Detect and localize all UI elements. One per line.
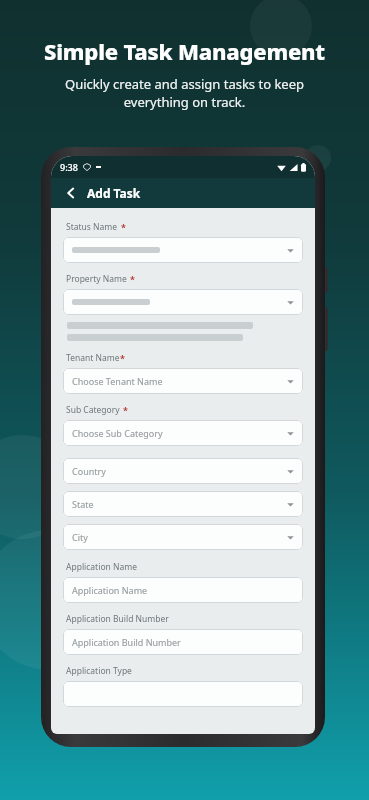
- staticText: Application Build Number: [72, 636, 181, 648]
- staticText: City: [72, 531, 88, 543]
- staticText: Application Name: [66, 561, 137, 573]
- button[interactable]: Application Name: [63, 577, 303, 603]
- button[interactable]: [63, 289, 303, 315]
- staticText: Application Type: [66, 665, 132, 677]
- staticText: Choose Tenant Name: [72, 375, 163, 387]
- staticText: Tenant Name: [66, 352, 120, 364]
- staticText: Application Build Number: [66, 613, 169, 625]
- staticText: Quickly create and assign tasks to keep …: [65, 75, 304, 111]
- button[interactable]: Back: [60, 182, 82, 204]
- staticText: Choose Sub Category: [72, 427, 163, 439]
- staticText: Simple Task Management: [44, 36, 325, 66]
- button[interactable]: Choose Tenant Name: [63, 368, 303, 394]
- button[interactable]: [63, 681, 303, 707]
- staticText: *: [123, 404, 128, 416]
- staticText: Country: [72, 465, 106, 477]
- staticText: Property Name: [66, 273, 127, 285]
- staticText: *: [121, 221, 126, 233]
- button[interactable]: State: [63, 491, 303, 517]
- staticText: 9:38: [60, 161, 78, 173]
- button[interactable]: Choose Sub Category: [63, 420, 303, 446]
- staticText: Add Task: [87, 185, 141, 201]
- button[interactable]: [63, 237, 303, 263]
- button[interactable]: City: [63, 524, 303, 550]
- staticText: *: [120, 352, 125, 364]
- button[interactable]: Application Build Number: [63, 629, 303, 655]
- staticText: Application Name: [72, 584, 148, 596]
- button[interactable]: Country: [63, 458, 303, 484]
- staticText: Sub Category: [66, 404, 120, 416]
- staticText: State: [72, 498, 94, 510]
- staticText: Status Name: [66, 221, 118, 233]
- staticText: *: [130, 273, 135, 285]
